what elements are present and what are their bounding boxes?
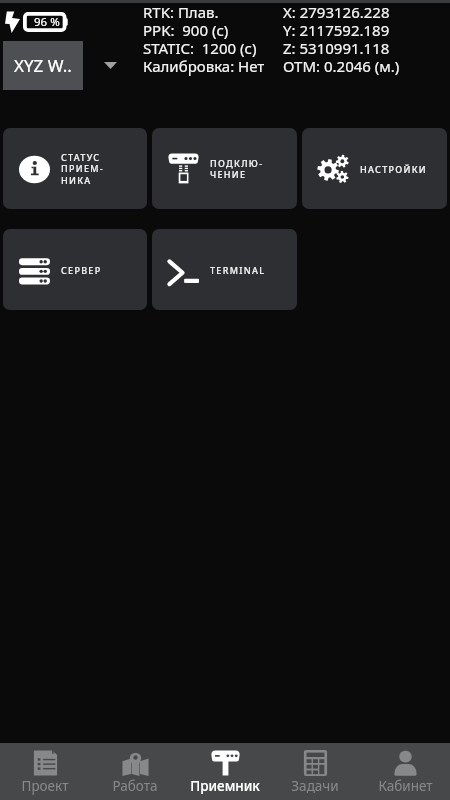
staticText: СТАТУС ПРИЕМ- НИКА xyxy=(61,151,105,187)
button[interactable]: XYZ W.. xyxy=(3,41,83,90)
button[interactable]: Приемник xyxy=(180,743,270,800)
staticText: X: 2793126.228 Y: 2117592.189 Z: 5310991… xyxy=(283,2,400,77)
button[interactable]: СТАТУС ПРИЕМ- НИКА xyxy=(3,128,147,209)
staticText: Задачи xyxy=(291,777,339,795)
staticText: Кабинет xyxy=(378,777,433,795)
button[interactable]: Задачи xyxy=(270,743,360,800)
button[interactable]: Работа xyxy=(90,743,180,800)
staticText: НАСТРОЙКИ xyxy=(360,163,427,175)
button[interactable]: Кабинет xyxy=(360,743,450,800)
staticText: ПОДКЛЮ- ЧЕНИЕ xyxy=(210,157,264,181)
button[interactable]: СЕРВЕР xyxy=(3,229,147,310)
button[interactable]: ПОДКЛЮ- ЧЕНИЕ xyxy=(152,128,297,209)
button[interactable]: Проект xyxy=(0,743,90,800)
staticText: Приемник xyxy=(190,777,260,795)
staticText: Проект xyxy=(21,777,69,795)
button[interactable]: Expand project list xyxy=(96,52,124,78)
staticText: RTK: Плав. PPK: 900 (с) STATIC: 1200 (с)… xyxy=(143,2,265,77)
staticText: TERMINAL xyxy=(210,264,266,276)
button[interactable]: НАСТРОЙКИ xyxy=(302,128,447,209)
staticText: Работа xyxy=(112,777,158,795)
button[interactable]: TERMINAL xyxy=(152,229,297,310)
staticText: 96 % xyxy=(34,14,60,30)
staticText: СЕРВЕР xyxy=(61,264,102,276)
staticText: XYZ W.. xyxy=(14,54,72,77)
